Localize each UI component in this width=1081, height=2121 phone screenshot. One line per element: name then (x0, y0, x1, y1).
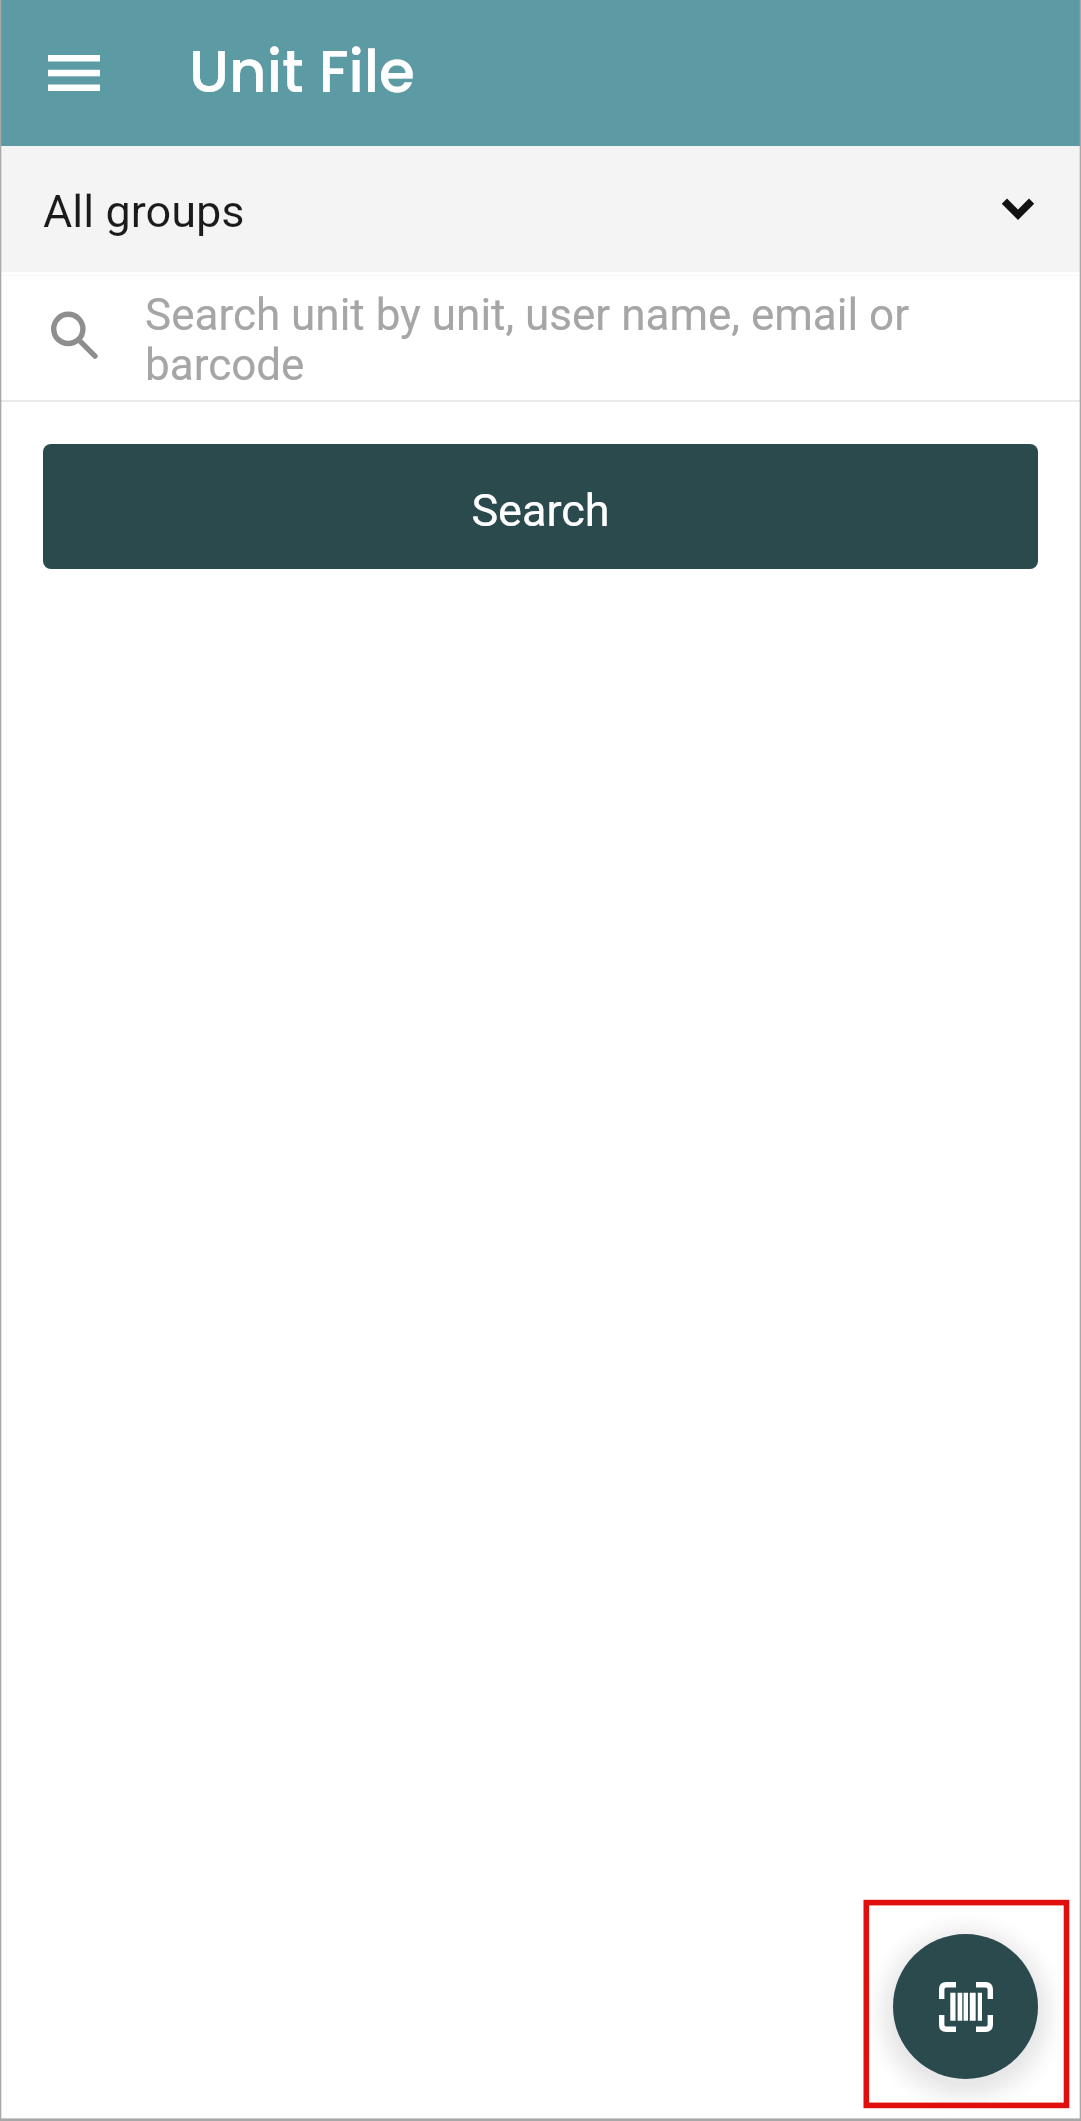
button[interactable]: Expand group selector (971, 162, 1065, 256)
button[interactable]: Search (43, 444, 1038, 569)
staticText: All groups (43, 185, 245, 238)
button[interactable]: Open navigation menu (24, 23, 124, 123)
staticText: Search (471, 484, 610, 537)
button[interactable]: All groups (0, 146, 1081, 272)
staticText: Search unit by unit, user name, email or… (145, 289, 1076, 391)
button[interactable]: Search unit by unit, user name, email or… (0, 276, 1081, 400)
staticText: Unit File (189, 31, 415, 112)
button[interactable]: Scan barcode (893, 1934, 1038, 2079)
